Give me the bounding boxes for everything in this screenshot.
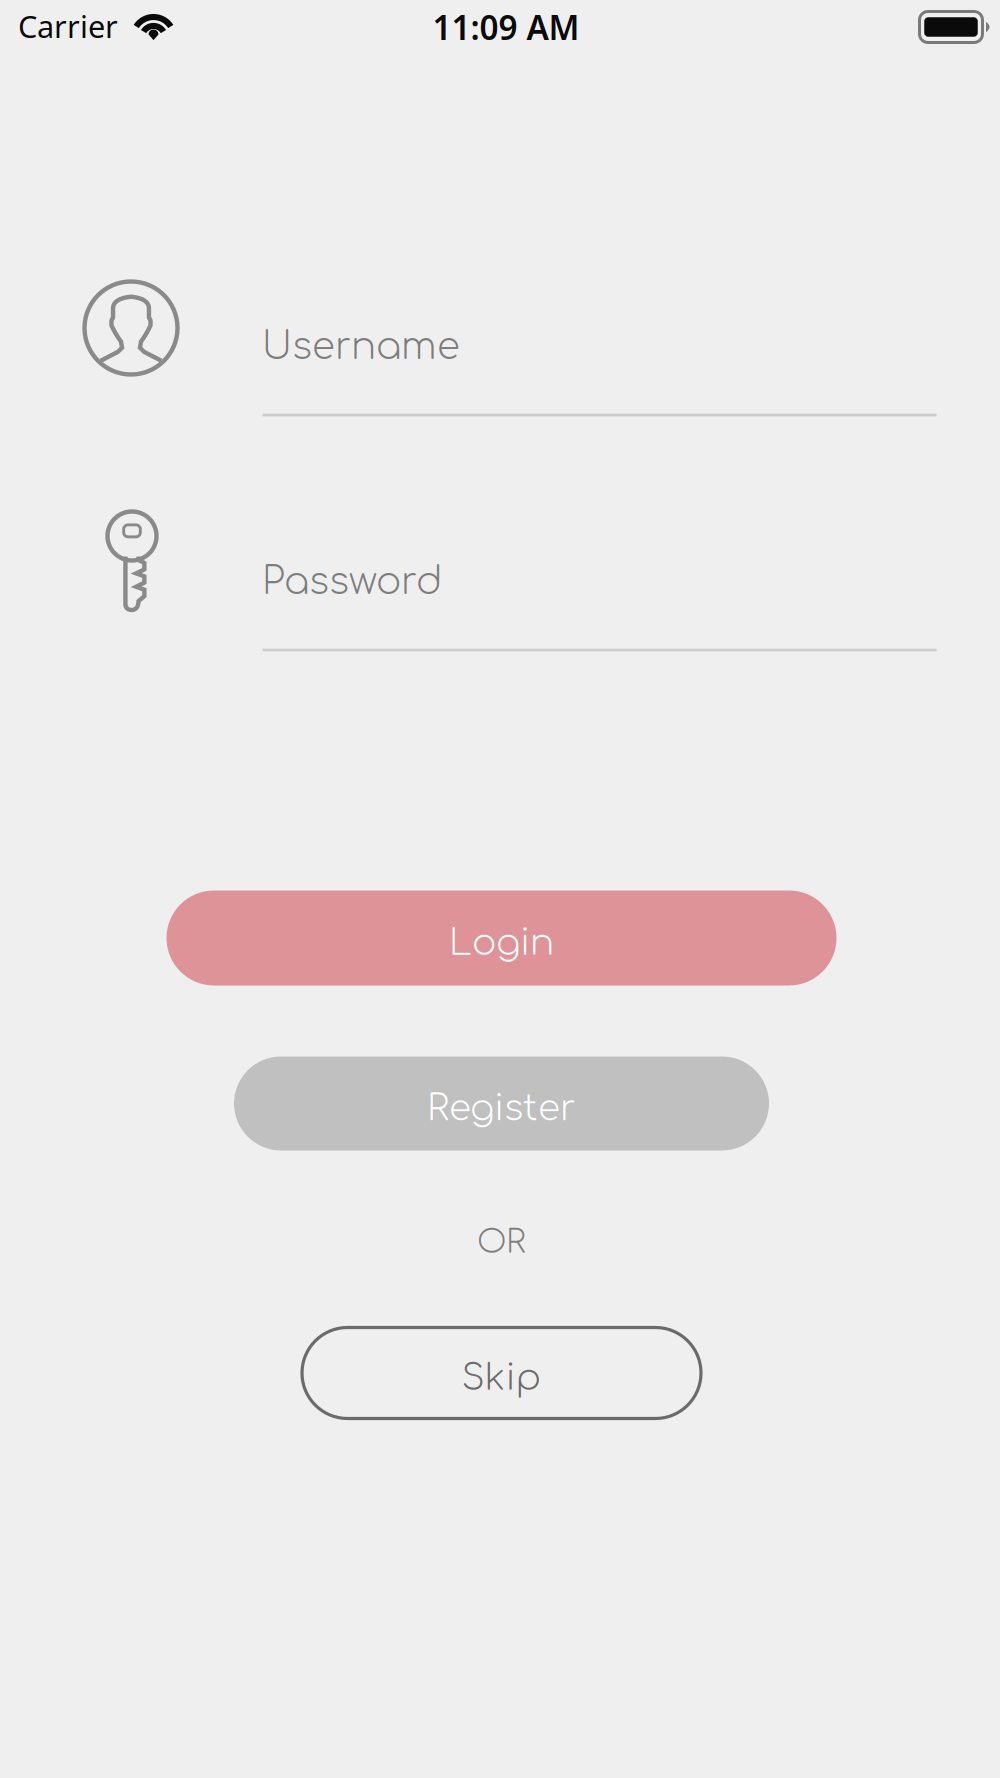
button[interactable]: Username: [15, 279, 936, 435]
button[interactable]: Register: [234, 1056, 769, 1150]
staticText: Carrier: [18, 6, 118, 46]
button[interactable]: Skip: [302, 1327, 701, 1418]
staticText: OR: [477, 1225, 525, 1260]
button[interactable]: Password: [15, 514, 936, 670]
staticText: Login: [449, 923, 554, 963]
button[interactable]: Login: [166, 890, 836, 985]
staticText: Username: [262, 326, 460, 368]
staticText: Password: [262, 561, 442, 603]
staticText: Skip: [461, 1358, 541, 1398]
staticText: Register: [427, 1088, 576, 1128]
staticText: 11:09 AM: [432, 5, 579, 49]
